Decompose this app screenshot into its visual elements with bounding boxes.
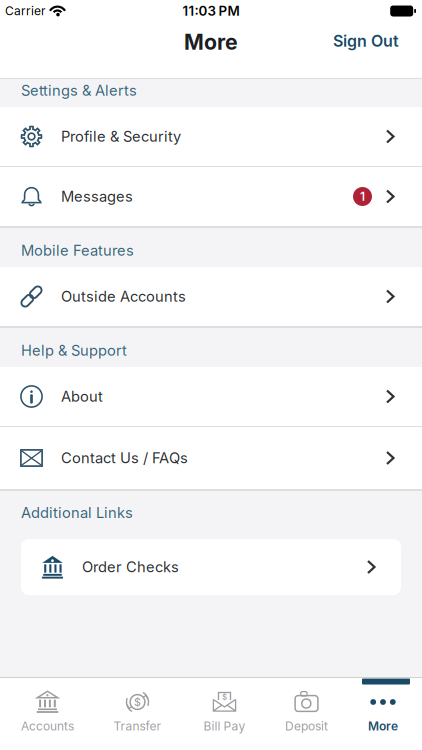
- staticText: Sign Out: [333, 32, 399, 50]
- staticText: Mobile Features: [21, 242, 134, 259]
- button[interactable]: Deposit: [269, 690, 344, 733]
- button[interactable]: Accounts: [0, 690, 95, 733]
- button[interactable]: $: [95, 690, 180, 733]
- staticText: Help & Support: [21, 342, 127, 359]
- button[interactable]: Outside Accounts: [0, 267, 422, 327]
- staticText: Contact Us / FAQs: [61, 449, 188, 467]
- button[interactable]: Messages: [0, 167, 422, 227]
- button[interactable]: More: [344, 690, 422, 733]
- button[interactable]: Order Checks: [21, 539, 401, 595]
- button[interactable]: $: [180, 690, 269, 733]
- staticText: Carrier: [5, 4, 46, 18]
- staticText: Accounts: [21, 719, 74, 733]
- staticText: $: [134, 696, 141, 708]
- staticText: More: [184, 29, 238, 55]
- staticText: About: [61, 388, 103, 405]
- staticText: 11:03 PM: [182, 3, 239, 19]
- staticText: More: [368, 719, 398, 733]
- staticText: Bill Pay: [203, 719, 245, 733]
- button[interactable]: Contact Us / FAQs: [0, 427, 422, 490]
- staticText: Order Checks: [82, 558, 179, 576]
- staticText: Settings & Alerts: [21, 82, 137, 99]
- staticText: Deposit: [285, 719, 328, 733]
- button[interactable]: Profile & Security: [0, 107, 422, 167]
- staticText: Additional Links: [21, 504, 133, 521]
- staticText: Outside Accounts: [61, 288, 186, 305]
- staticText: $: [222, 692, 227, 701]
- staticText: Profile & Security: [61, 128, 181, 145]
- staticText: Transfer: [113, 719, 161, 733]
- button[interactable]: About: [0, 367, 422, 427]
- staticText: 1: [360, 189, 365, 204]
- button[interactable]: Sign Out: [333, 32, 422, 50]
- staticText: Messages: [61, 188, 133, 205]
